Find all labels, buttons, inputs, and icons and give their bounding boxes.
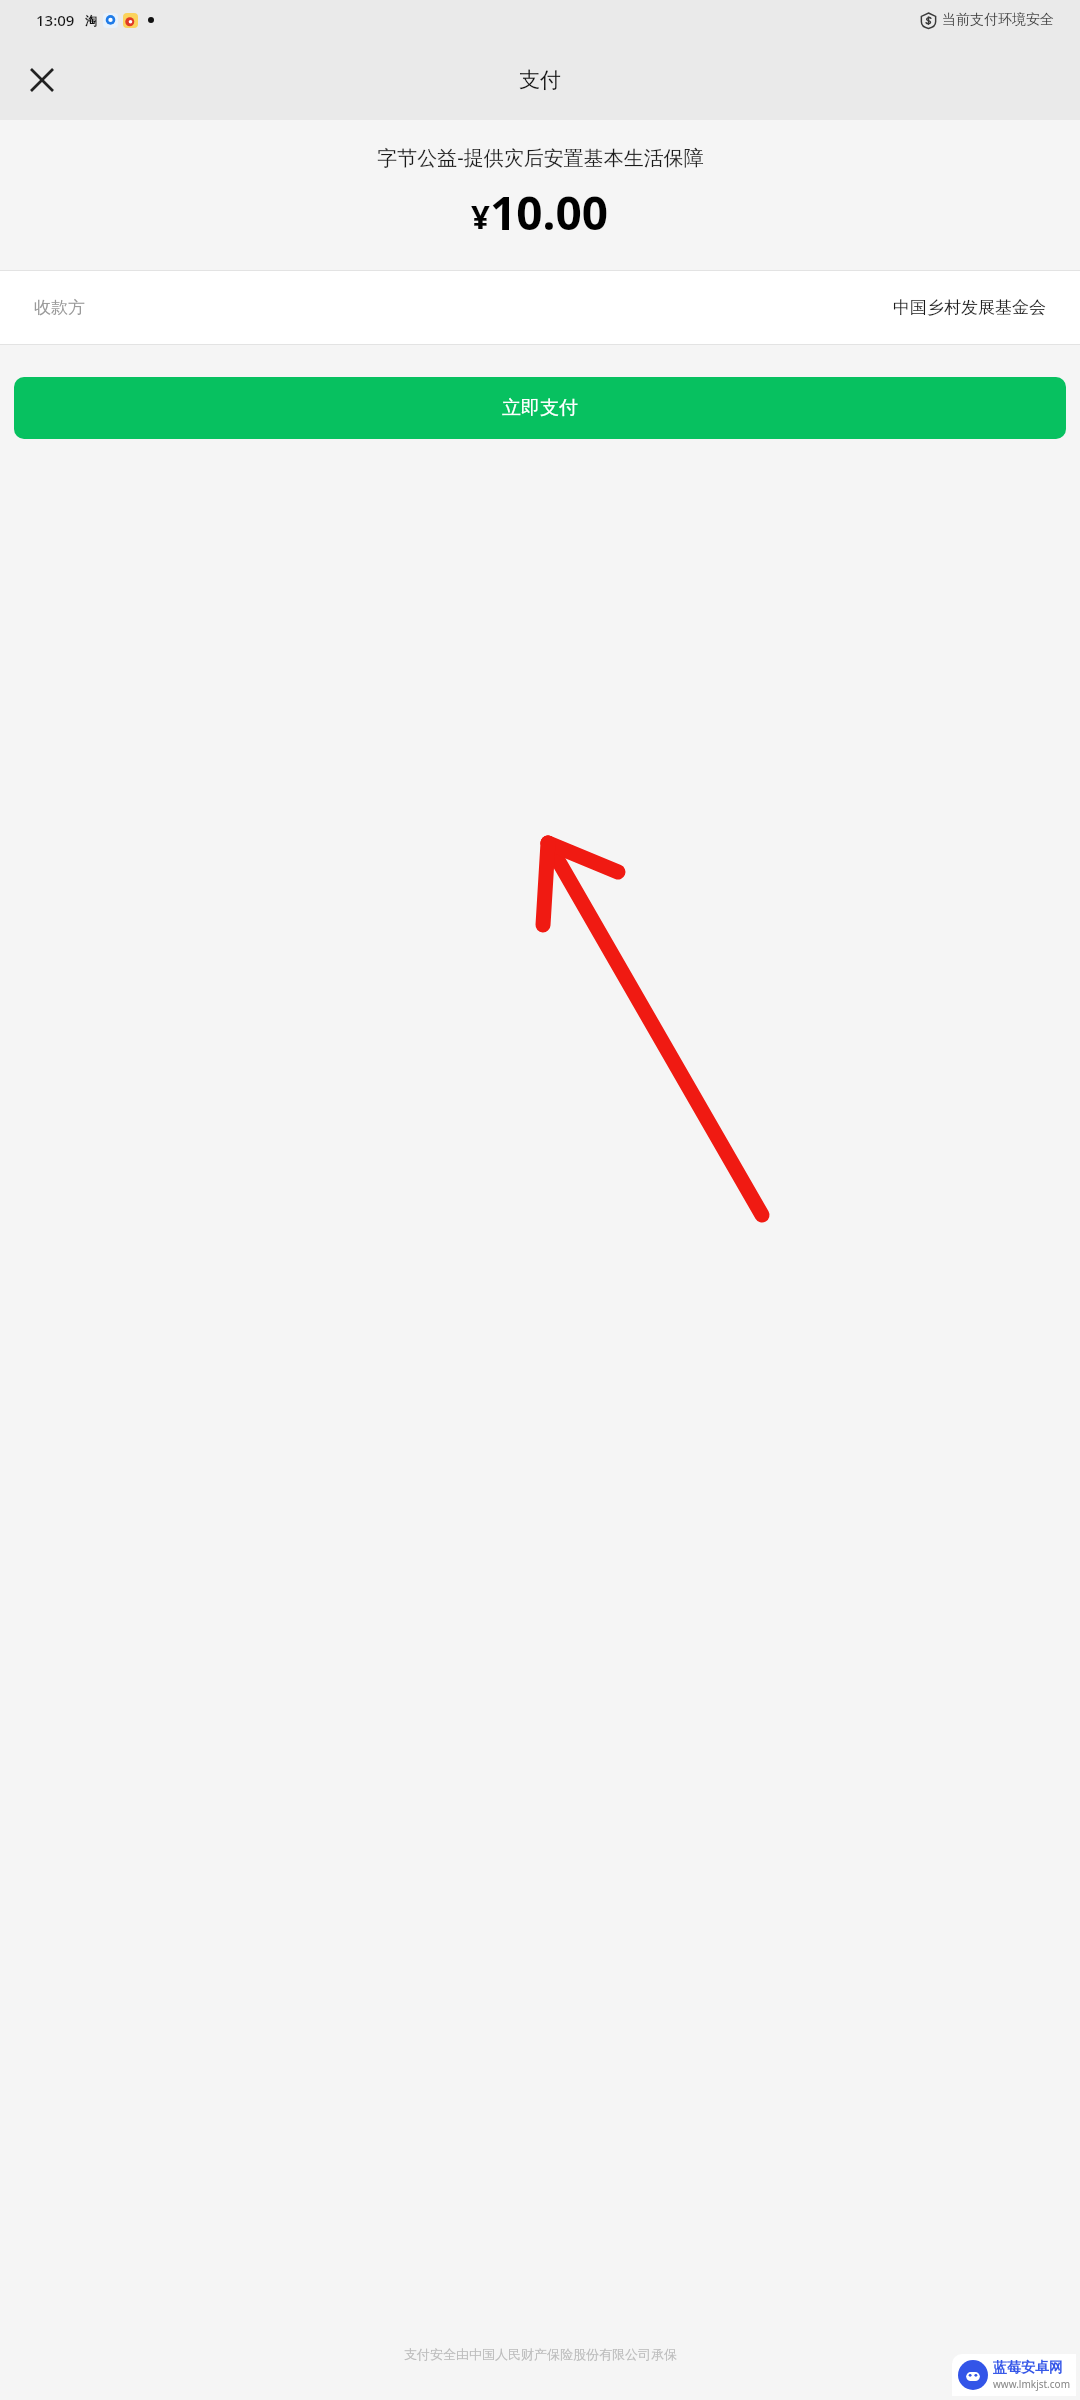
staticText: 10.00 xyxy=(490,181,609,244)
staticText: 中国乡村发展基金会 xyxy=(893,297,1046,318)
staticText: 蓝莓安卓网 xyxy=(993,2359,1063,2377)
staticText: 收款方 xyxy=(34,297,85,318)
staticText: 支付安全由中国人民财产保险股份有限公司承保 xyxy=(404,2346,677,2362)
button[interactable]: Close xyxy=(14,52,70,108)
staticText: ¥ xyxy=(471,194,490,239)
staticText: 淘 xyxy=(85,13,97,28)
staticText: 字节公益-提供灾后安置基本生活保障 xyxy=(377,144,704,171)
staticText: 13:09 xyxy=(36,10,75,30)
staticText: 支付 xyxy=(519,67,561,93)
button[interactable]: 立即支付 xyxy=(14,377,1066,439)
staticText: 立即支付 xyxy=(502,396,578,420)
staticText: 当前支付环境安全 xyxy=(942,11,1054,29)
button[interactable]: 收款方 xyxy=(0,271,1080,344)
staticText: www.lmkjst.com xyxy=(993,2377,1070,2391)
